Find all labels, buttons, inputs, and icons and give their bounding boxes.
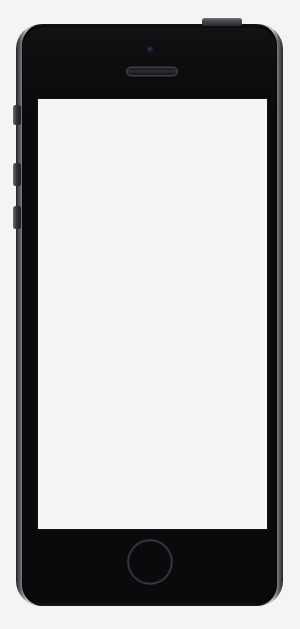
button[interactable]: Power	[202, 16, 242, 27]
button[interactable]: Volume up	[12, 163, 22, 186]
button[interactable]: Silent switch	[12, 105, 22, 125]
button[interactable]: Volume down	[12, 206, 22, 229]
button[interactable]: Home	[128, 540, 172, 584]
